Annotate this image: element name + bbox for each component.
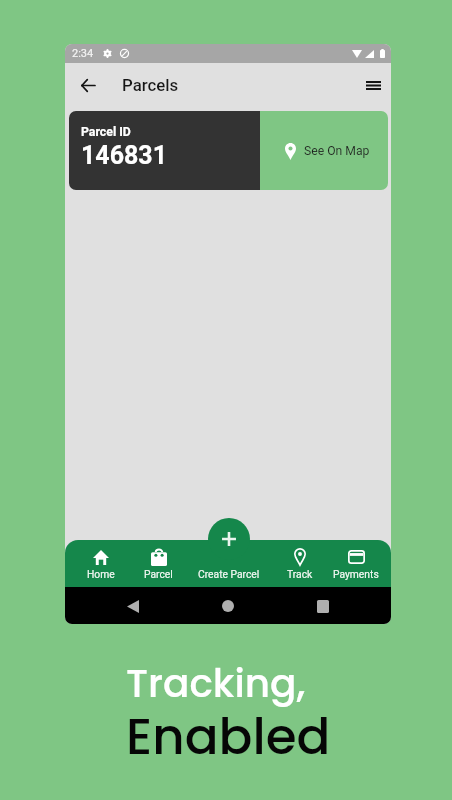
button[interactable]: Home <box>65 540 137 587</box>
staticText: Enabled <box>126 702 331 772</box>
staticText: Parcels <box>122 75 179 95</box>
staticText: Home <box>87 568 115 580</box>
staticText: Create Parcel <box>198 568 260 580</box>
button[interactable]: Parcel <box>137 540 179 587</box>
button[interactable]: Parcel ID <box>69 111 260 190</box>
staticText: See On Map <box>304 144 370 158</box>
staticText: Parcel <box>144 568 173 580</box>
button[interactable]: Create Parcel <box>179 540 279 587</box>
staticText: Tracking, <box>126 656 306 711</box>
button[interactable]: Create Parcel <box>208 518 250 560</box>
button[interactable]: Menu <box>358 70 388 100</box>
staticText: Parcel ID <box>81 125 131 139</box>
button[interactable]: See On Map <box>260 111 388 190</box>
button[interactable]: Back <box>73 70 103 100</box>
staticText: Track <box>287 568 313 580</box>
staticText: 146831 <box>81 141 168 170</box>
staticText: Payments <box>333 568 379 580</box>
staticText: 2:34 <box>72 47 94 60</box>
button[interactable]: Payments <box>321 540 391 587</box>
button[interactable]: Track <box>279 540 321 587</box>
